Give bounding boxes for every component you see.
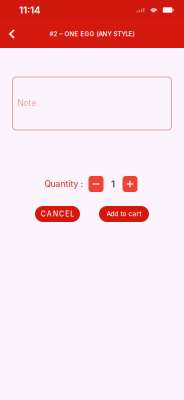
button[interactable]: CANCEL <box>35 206 80 222</box>
staticText: CANCEL <box>41 210 74 218</box>
staticText: 1 <box>111 178 115 190</box>
button[interactable]: Add to cart <box>99 206 149 222</box>
button[interactable]: Increase quantity <box>122 176 137 192</box>
staticText: 11:14 <box>19 4 40 16</box>
staticText: #2 – ONE EGG (ANY STYLE) <box>49 30 134 38</box>
staticText: Note <box>17 98 36 108</box>
staticText: Quantity : <box>44 179 83 189</box>
staticText: Add to cart <box>106 210 141 218</box>
button[interactable]: Decrease quantity <box>88 176 103 192</box>
button[interactable]: Back <box>0 21 24 47</box>
